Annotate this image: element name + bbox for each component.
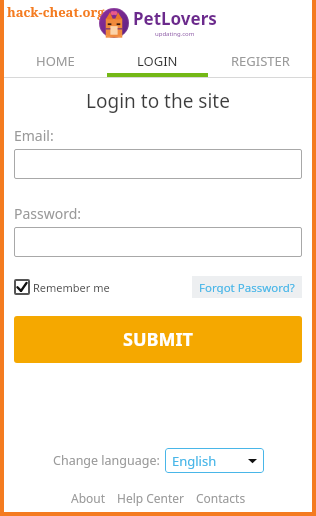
staticText: hack-cheat.org (7, 3, 105, 21)
staticText: Change language: (53, 452, 160, 469)
staticText: Help Center (117, 490, 185, 506)
staticText: SUBMIT (123, 327, 193, 352)
button[interactable] (14, 149, 302, 179)
button[interactable]: Contacts (196, 490, 246, 506)
button[interactable]: LOGIN (106, 44, 209, 77)
button[interactable] (14, 227, 302, 257)
staticText: English (172, 452, 217, 470)
staticText: HOME (36, 52, 75, 70)
staticText: Contacts (196, 490, 246, 506)
button[interactable]: About (71, 490, 106, 506)
button[interactable]: Remember me (14, 279, 110, 295)
button[interactable]: HOME (4, 44, 106, 77)
staticText: About (71, 490, 106, 506)
staticText: updating.com (155, 30, 195, 38)
staticText: Remember me (33, 280, 110, 295)
button[interactable]: SUBMIT (14, 316, 302, 363)
staticText: LOGIN (137, 52, 178, 70)
button[interactable]: English (165, 448, 264, 473)
staticText: REGISTER (231, 52, 290, 70)
button[interactable]: Help Center (117, 490, 185, 506)
staticText: Email: (14, 126, 54, 145)
staticText: Forgot Password? (199, 280, 295, 294)
button[interactable]: REGISTER (209, 44, 312, 77)
staticText: PetLovers (133, 7, 217, 30)
button[interactable]: Forgot Password? (192, 276, 302, 298)
staticText: Login to the site (14, 88, 302, 114)
staticText: Password: (14, 204, 82, 223)
